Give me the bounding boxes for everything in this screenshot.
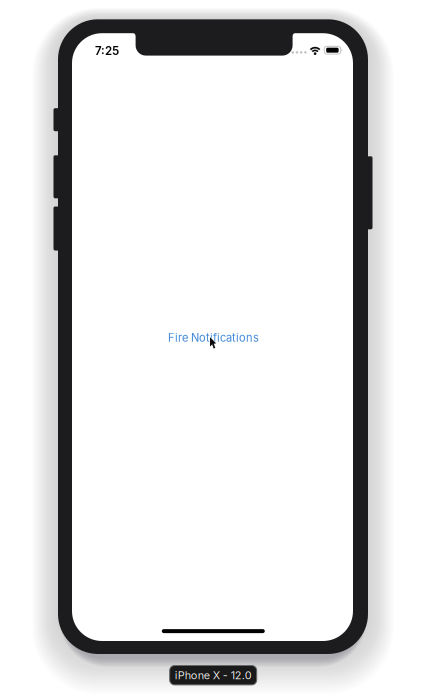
staticText: iPhone X - 12.0 (175, 669, 252, 682)
staticText: Fire Notifications (168, 331, 259, 344)
button[interactable]: Fire Notifications (162, 327, 265, 348)
staticText: 7:25 (95, 44, 119, 58)
button[interactable]: iPhone X - 12.0 (170, 665, 257, 685)
